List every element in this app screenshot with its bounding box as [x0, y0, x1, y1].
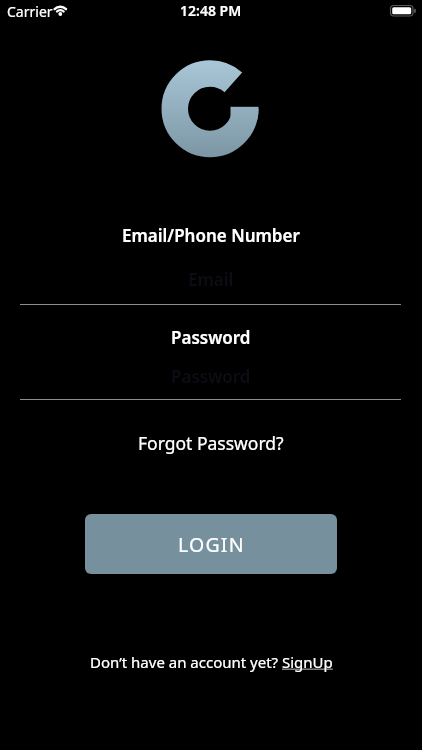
- staticText: 12:48 PM: [180, 1, 242, 20]
- staticText: Don’t have an account yet? SignUp: [90, 652, 333, 672]
- button[interactable]: Don’t have an account yet? SignUp: [90, 652, 333, 672]
- staticText: Password: [171, 365, 251, 388]
- staticText: LOGIN: [178, 531, 245, 558]
- staticText: Email: [188, 268, 234, 291]
- staticText: Email/Phone Number: [122, 224, 300, 247]
- button[interactable]: LOGIN: [85, 514, 337, 574]
- staticText: Carrier: [7, 2, 53, 21]
- button[interactable]: Forgot Password?: [134, 427, 288, 459]
- staticText: Forgot Password?: [138, 431, 284, 455]
- staticText: Password: [171, 326, 251, 349]
